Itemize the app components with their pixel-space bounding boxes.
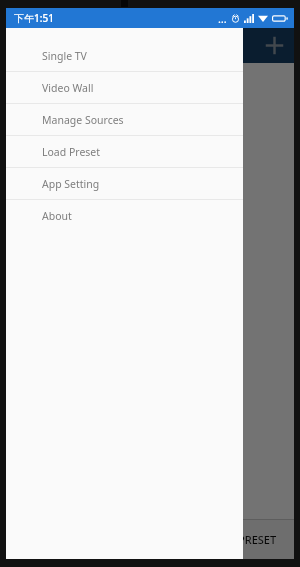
button[interactable]: Single TV bbox=[6, 40, 243, 71]
button[interactable]: Load Preset bbox=[6, 136, 243, 167]
button[interactable]: Add bbox=[254, 28, 294, 63]
button[interactable]: App Setting bbox=[6, 168, 243, 199]
staticText: Single TV bbox=[42, 49, 87, 63]
staticText: 下午1:51 bbox=[14, 11, 54, 25]
staticText: App Setting bbox=[42, 177, 100, 191]
staticText: PRESET bbox=[238, 532, 277, 547]
staticText: Manage Sources bbox=[42, 113, 124, 127]
staticText: … bbox=[218, 11, 227, 26]
staticText: Load Preset bbox=[42, 145, 101, 159]
button[interactable]: About bbox=[6, 200, 243, 231]
button[interactable]: Video Wall bbox=[6, 72, 243, 103]
staticText: About bbox=[42, 209, 72, 223]
button[interactable]: PRESET bbox=[220, 519, 294, 559]
staticText: Video Wall bbox=[42, 81, 94, 95]
button[interactable]: Manage Sources bbox=[6, 104, 243, 135]
